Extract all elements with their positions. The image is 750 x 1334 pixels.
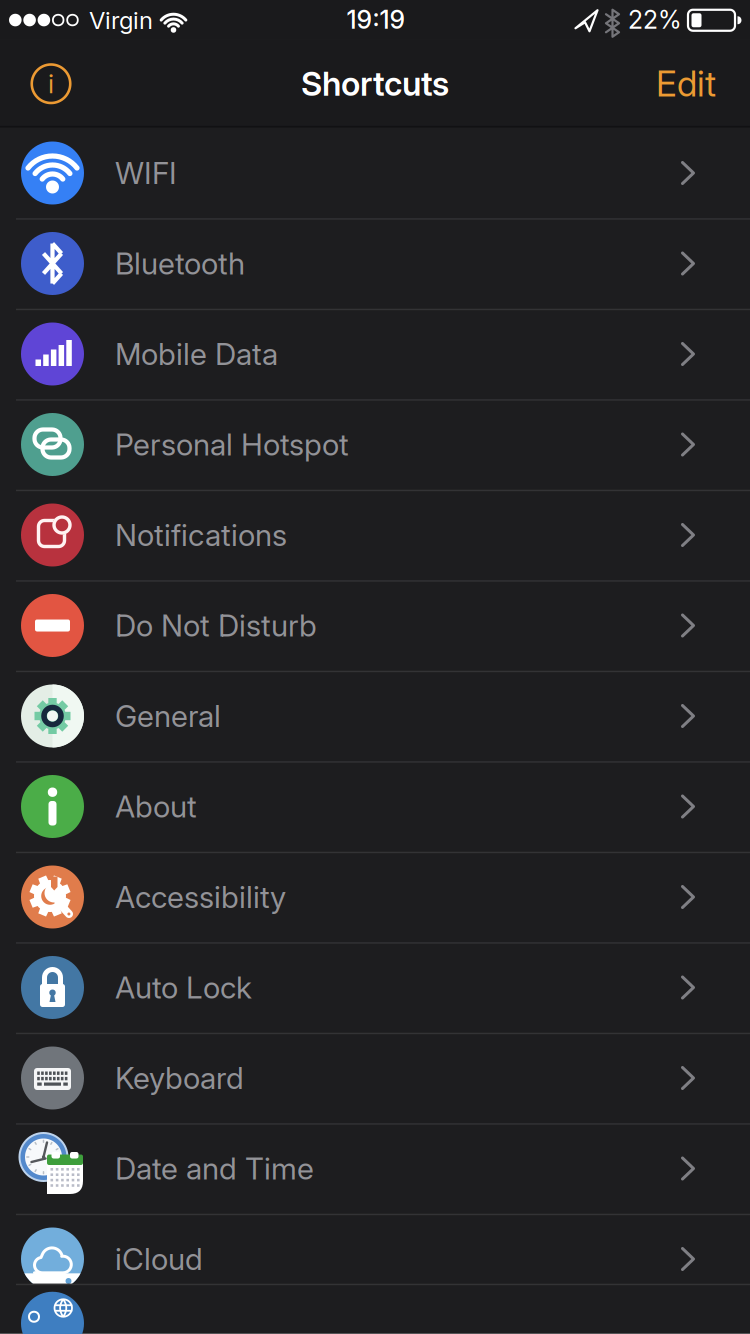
staticText: Shortcuts xyxy=(301,64,449,104)
button[interactable]: Date and Time xyxy=(0,1123,750,1214)
staticText: Mobile Data xyxy=(115,336,278,372)
staticText: Accessibility xyxy=(115,879,286,915)
staticText: 22% xyxy=(628,5,682,35)
staticText: About xyxy=(115,788,197,825)
button[interactable]: Bluetooth xyxy=(0,218,750,309)
button[interactable]: Info xyxy=(22,55,80,113)
staticText: 19:19 xyxy=(346,5,405,35)
staticText: Do Not Disturb xyxy=(115,607,317,644)
button[interactable]: About xyxy=(0,761,750,852)
button[interactable]: Accessibility xyxy=(0,852,750,942)
button[interactable]: Do Not Disturb xyxy=(0,580,750,671)
button[interactable]: Edit xyxy=(631,53,741,115)
staticText: Keyboard xyxy=(115,1060,244,1096)
button[interactable]: Notifications xyxy=(0,490,750,580)
staticText: Edit xyxy=(656,63,716,105)
button[interactable]: Personal Hotspot xyxy=(0,399,750,490)
button[interactable]: Keyboard xyxy=(0,1033,750,1123)
staticText: General xyxy=(115,698,221,734)
staticText: Personal Hotspot xyxy=(115,426,349,463)
button[interactable]: iCloud xyxy=(0,1214,750,1304)
staticText: Notifications xyxy=(115,517,287,553)
staticText: i xyxy=(48,68,54,99)
button[interactable]: General xyxy=(0,671,750,761)
staticText: WIFI xyxy=(115,155,177,191)
staticText: Date and Time xyxy=(115,1150,314,1187)
button[interactable]: WIFI xyxy=(0,128,750,218)
button[interactable]: Auto Lock xyxy=(0,942,750,1033)
staticText: Virgin xyxy=(89,6,153,35)
button[interactable]: Mobile Data xyxy=(0,309,750,399)
staticText: Auto Lock xyxy=(115,969,252,1006)
staticText: Bluetooth xyxy=(115,245,245,282)
staticText: iCloud xyxy=(115,1241,203,1277)
button[interactable]: Language xyxy=(0,1304,750,1334)
